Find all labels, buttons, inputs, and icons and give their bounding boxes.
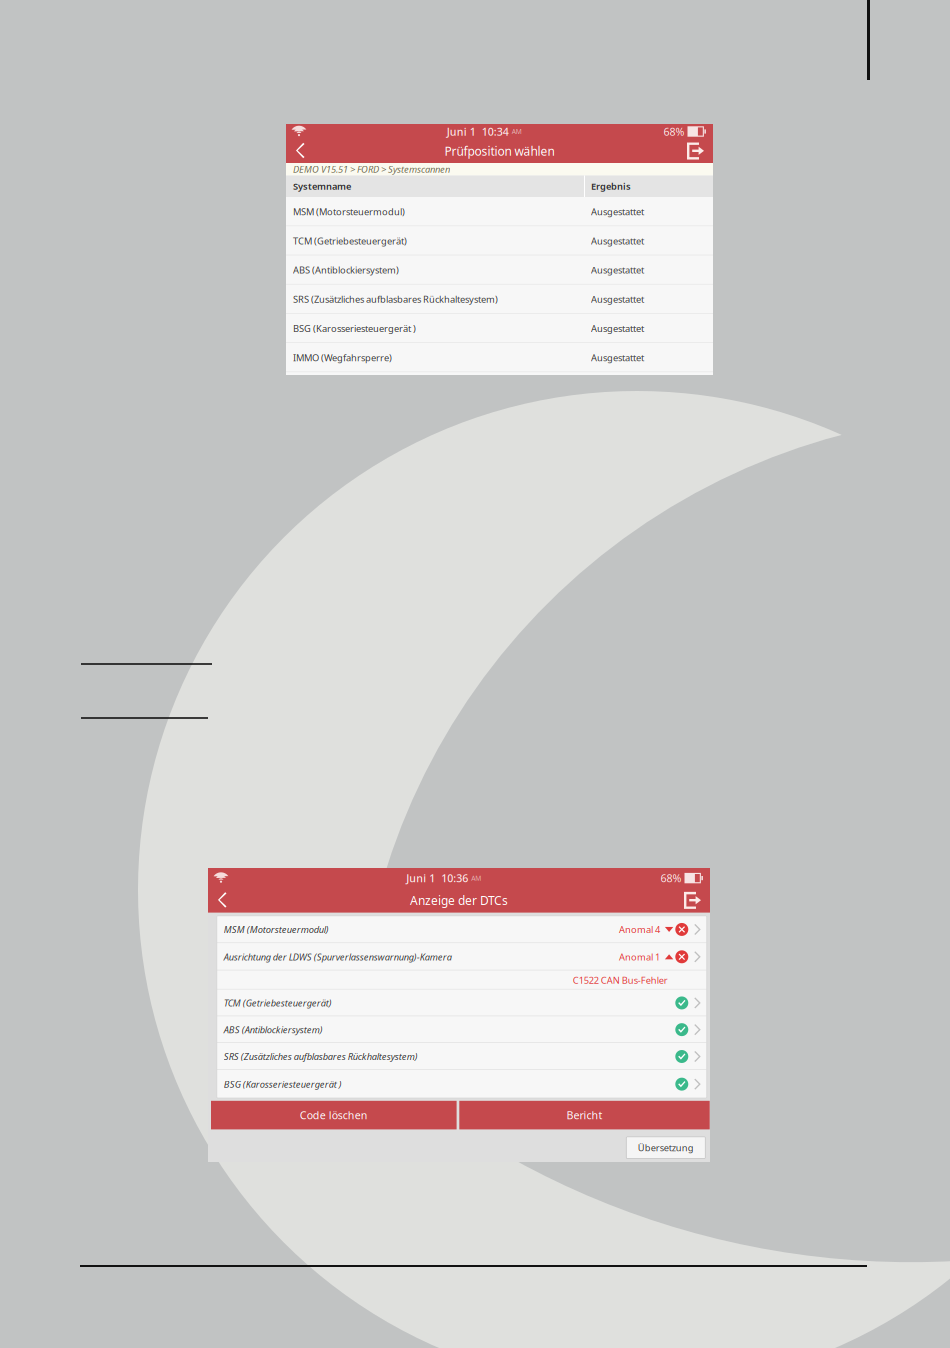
staticText: IMMO (Wegfahrsperre) [293, 351, 392, 364]
button[interactable]: SRS (Zusätzliches aufblasbares Rückhalte… [286, 285, 713, 314]
button[interactable]: MSM (Motorsteuermodul) [286, 197, 713, 226]
button[interactable]: Back [290, 139, 311, 163]
staticText: C1522 CAN Bus-Fehler [573, 974, 668, 986]
staticText: Übersetzung [638, 1141, 694, 1154]
button[interactable]: Code löschen [211, 1101, 457, 1129]
staticText: BSG (Karosseriesteuergerät ) [224, 1078, 342, 1090]
staticText: DEMO V15.51 > FORD > Systemscannen [293, 163, 450, 175]
staticText: MSM (Motorsteuermodul) [224, 923, 329, 936]
staticText: TCM (Getriebesteuergerät) [224, 997, 332, 1009]
staticText: Systemname [293, 180, 351, 192]
staticText: Prüfposition wählen [444, 143, 554, 159]
staticText: 68% [663, 124, 684, 139]
staticText: Ausgestattet [591, 293, 644, 305]
staticText: Anzeige der DTCs [410, 892, 508, 908]
staticText: Ausgestattet [591, 205, 644, 218]
staticText: ABS (Antiblockiersystem) [224, 1023, 323, 1036]
button[interactable]: BSG (Karosseriesteuergerät ) [217, 1070, 707, 1098]
staticText: Ausgestattet [591, 235, 644, 247]
staticText: Ausgestattet [591, 351, 644, 364]
staticText: Juni 1 10:34 [447, 124, 509, 139]
staticText: Anomal 1 [619, 951, 660, 963]
button[interactable]: MSM (Motorsteuermodul) [217, 916, 707, 943]
staticText: 68% [660, 871, 681, 885]
button[interactable]: Bericht [459, 1101, 710, 1129]
staticText: AM [471, 874, 481, 883]
staticText: AM [512, 127, 522, 136]
button[interactable]: SRS (Zusätzliches aufblasbares Rückhalte… [217, 1043, 707, 1070]
button[interactable]: Ausrichtung der LDWS (Spurverlassenswarn… [217, 943, 707, 970]
staticText: Code löschen [300, 1108, 368, 1122]
button[interactable]: IMMO (Wegfahrsperre) [286, 343, 713, 372]
staticText: Ergebnis [591, 180, 631, 192]
button[interactable]: Back [212, 888, 233, 913]
staticText: SRS (Zusätzliches aufblasbares Rückhalte… [293, 293, 498, 305]
button[interactable]: Exit [682, 139, 709, 163]
button[interactable]: Exit [679, 888, 706, 913]
staticText: BSG (Karosseriesteuergerät ) [293, 322, 416, 335]
staticText: ABS (Antiblockiersystem) [293, 264, 399, 276]
staticText: Ausgestattet [591, 264, 644, 276]
staticText: Anomal 4 [619, 923, 660, 936]
button[interactable]: ABS (Antiblockiersystem) [217, 1016, 707, 1043]
staticText: Ausgestattet [591, 322, 644, 335]
button[interactable]: ABS (Antiblockiersystem) [286, 255, 713, 285]
button[interactable]: BSG (Karosseriesteuergerät ) [286, 314, 713, 343]
staticText: Juni 1 10:36 [406, 871, 468, 885]
button[interactable]: TCM (Getriebesteuergerät) [217, 990, 707, 1016]
staticText: Ausrichtung der LDWS (Spurverlassenswarn… [224, 951, 452, 963]
staticText: MSM (Motorsteuermodul) [293, 205, 405, 218]
button[interactable]: Übersetzung [626, 1137, 705, 1159]
staticText: TCM (Getriebesteuergerät) [293, 235, 407, 247]
staticText: SRS (Zusätzliches aufblasbares Rückhalte… [224, 1050, 418, 1063]
staticText: Bericht [566, 1108, 602, 1122]
button[interactable]: TCM (Getriebesteuergerät) [286, 226, 713, 255]
